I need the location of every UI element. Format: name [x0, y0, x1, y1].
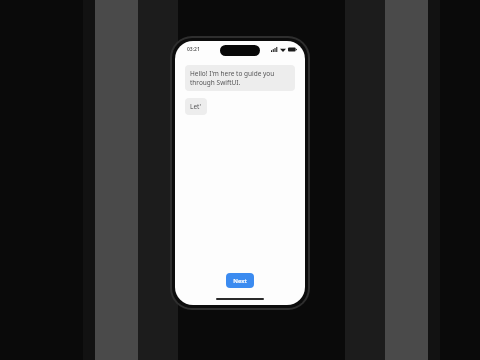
button[interactable]: Hello! I'm here to guide you through Swi…	[185, 65, 295, 91]
other: Battery	[288, 47, 297, 52]
button[interactable]: Let'	[185, 98, 207, 115]
staticText: Next	[233, 277, 247, 285]
other: Cellular signal	[271, 47, 278, 52]
other: Wi-Fi	[280, 47, 286, 52]
staticText: Let'	[190, 102, 202, 111]
staticText: 03:21	[187, 46, 200, 53]
staticText: Hello! I'm here to guide you through Swi…	[190, 69, 290, 87]
button[interactable]: Next	[226, 273, 254, 288]
